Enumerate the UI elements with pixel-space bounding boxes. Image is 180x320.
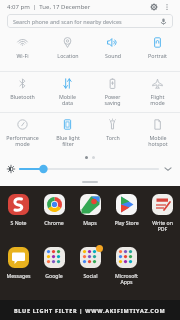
staticText: Blue light filter [56, 134, 80, 148]
button[interactable]: Search phone and scan for nearby devices [7, 14, 173, 28]
staticText: Wi-Fi [16, 52, 29, 59]
button[interactable]: Expand brightness [163, 164, 173, 174]
staticText: Performance mode [6, 134, 39, 148]
button[interactable]: Google [36, 245, 72, 293]
staticText: Write on PDF [152, 219, 173, 232]
staticText: Social [83, 272, 98, 279]
button[interactable]: Performance mode [0, 113, 45, 153]
staticText: Mobile data [59, 93, 76, 107]
button[interactable]: Bluetooth [0, 72, 45, 112]
button[interactable]: Brightness [20, 164, 158, 174]
staticText: Power saving [104, 93, 121, 107]
button[interactable]: Torch [90, 113, 135, 153]
staticText: Mobile hotspot [148, 134, 168, 148]
staticText: 4:07 pm | Tue, 17 December [7, 3, 91, 11]
staticText: Sound [105, 52, 121, 59]
staticText: Flight mode [150, 93, 165, 107]
staticText: Messages [6, 272, 31, 279]
button[interactable]: Maps [72, 192, 108, 240]
button[interactable]: Power saving [90, 72, 135, 112]
button[interactable]: Play Store [108, 192, 144, 240]
button[interactable]: Mobile data [45, 72, 90, 112]
button[interactable]: Location [45, 31, 90, 71]
staticText: Google [45, 272, 63, 279]
staticText: Play Store [114, 219, 139, 226]
staticText: BLUE LIGHT FILTER | WWW.AKIFIMTIYAZ.COM [14, 307, 166, 314]
staticText: Chrome [44, 219, 64, 226]
button[interactable]: Sound [90, 31, 135, 71]
button[interactable]: Write on PDF [144, 192, 180, 240]
staticText: Portrait [148, 52, 167, 59]
button[interactable]: Blue light filter [45, 113, 90, 153]
button[interactable]: Chrome [36, 192, 72, 240]
button[interactable]: Microsoft Apps [108, 245, 144, 293]
button[interactable]: S Note [0, 192, 36, 240]
button[interactable]: Social [72, 245, 108, 293]
staticText: Location [57, 52, 79, 59]
button[interactable]: Messages [0, 245, 36, 293]
button[interactable]: Wi-Fi [0, 31, 45, 71]
staticText: Bluetooth [10, 93, 35, 100]
button[interactable]: Portrait [135, 31, 180, 71]
button[interactable]: Mobile hotspot [135, 113, 180, 153]
staticText: Search phone and scan for nearby devices [13, 18, 122, 25]
staticText: Maps [83, 219, 97, 226]
button[interactable]: Flight mode [135, 72, 180, 112]
button[interactable]: More options [161, 1, 173, 13]
button[interactable]: Settings [147, 0, 161, 14]
staticText: Microsoft Apps [115, 272, 138, 285]
staticText: S Note [10, 219, 27, 226]
staticText: Torch [106, 134, 120, 141]
